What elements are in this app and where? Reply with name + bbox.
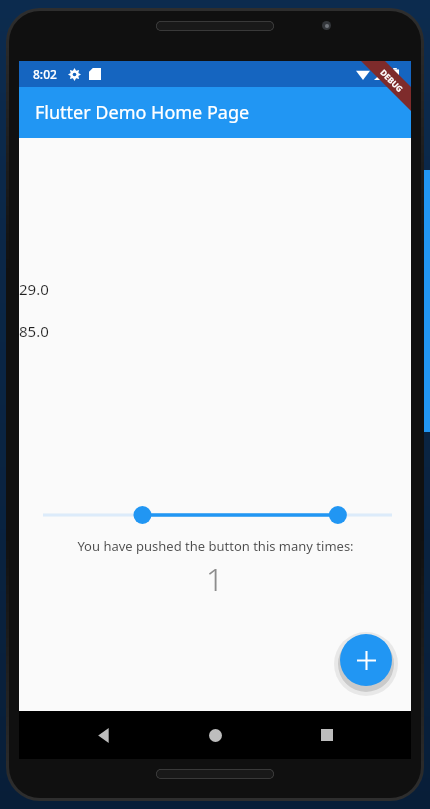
button[interactable]: Add xyxy=(340,634,392,686)
staticText: You have pushed the button this many tim… xyxy=(77,537,354,555)
staticText: 85.0 xyxy=(19,321,49,341)
staticText: DEBUG xyxy=(378,67,406,94)
button[interactable]: Range slider xyxy=(33,501,425,529)
button[interactable]: Recent apps xyxy=(300,711,354,759)
staticText: 29.0 xyxy=(19,279,49,299)
button[interactable]: Back xyxy=(77,711,131,759)
button[interactable]: Flutter Demo Home Page xyxy=(19,87,411,138)
staticText: 8:02 xyxy=(33,66,57,82)
button[interactable]: Home xyxy=(188,711,242,759)
staticText: Flutter Demo Home Page xyxy=(35,100,250,125)
staticText: 1 xyxy=(206,558,224,600)
